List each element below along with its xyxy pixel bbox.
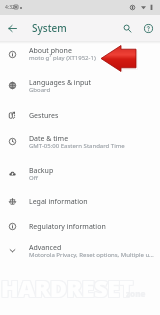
staticText: Languages & input (29, 78, 92, 88)
staticText: Backup (29, 166, 54, 176)
staticText: HARDRESET (0, 272, 132, 303)
staticText: Off (29, 174, 38, 182)
staticText: HARDRESET (1, 273, 133, 304)
staticText: Gboard (29, 86, 51, 94)
staticText: HARDRESET (1, 271, 133, 302)
staticText: Regulatory information (29, 222, 106, 232)
button[interactable]: Back (2, 18, 22, 38)
staticText: GMT-05:00 Eastern Standard Time (29, 142, 125, 150)
button[interactable]: Advanced (0, 239, 160, 263)
staticText: Gestures (29, 111, 59, 121)
button[interactable]: About phone (0, 43, 160, 67)
staticText: zone (126, 288, 146, 299)
button[interactable]: Regulatory information (0, 215, 160, 239)
button[interactable]: Languages & input (0, 74, 160, 98)
button[interactable]: Gestures (0, 104, 160, 128)
staticText: HARDRESET (0, 271, 132, 302)
staticText: Legal information (29, 197, 88, 207)
staticText: 4:32 (5, 4, 15, 11)
staticText: System (32, 21, 67, 35)
button[interactable]: Legal information (0, 190, 160, 214)
staticText: Advanced (29, 243, 62, 253)
staticText: HARDRESET (2, 271, 134, 302)
staticText: moto g⁷ play (XT1952-1) (29, 54, 96, 62)
staticText: HARDRESET (0, 273, 132, 304)
staticText: Motorola Privacy, Reset options, Multipl… (29, 251, 154, 259)
button[interactable]: Backup (0, 162, 160, 186)
staticText: Date & time (29, 134, 69, 144)
staticText: About phone (29, 46, 72, 56)
staticText: HARDRESET (2, 273, 134, 304)
staticText: HARDRESET (2, 272, 134, 303)
button[interactable]: Date & time (0, 130, 160, 154)
button[interactable]: Help (138, 18, 158, 38)
button[interactable]: Search (117, 18, 137, 38)
staticText: HARDRESET (1, 272, 133, 303)
